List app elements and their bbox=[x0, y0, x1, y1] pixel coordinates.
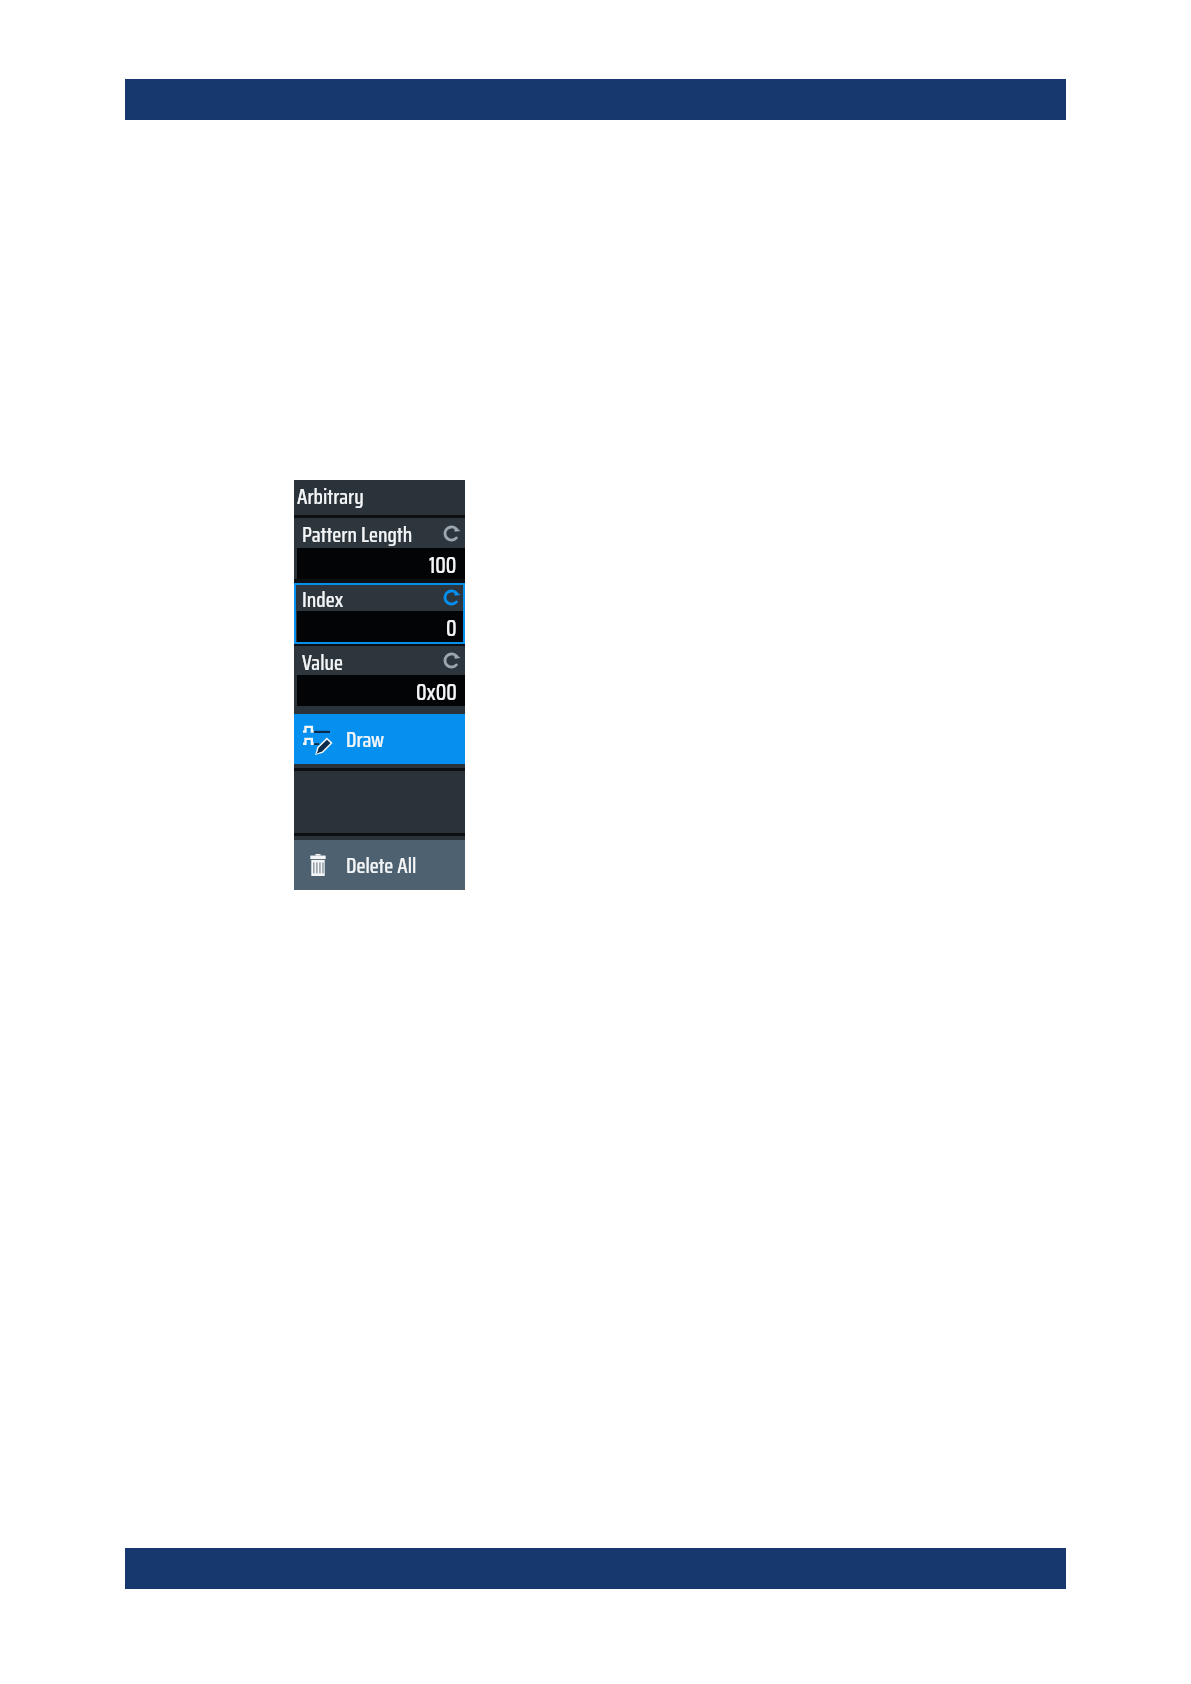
button[interactable]: Value bbox=[294, 646, 465, 706]
staticText: Arbitrary bbox=[297, 480, 364, 513]
other: Reset bbox=[442, 588, 461, 607]
other: Reset bbox=[442, 524, 461, 543]
button[interactable]: Index bbox=[294, 583, 465, 644]
button[interactable]: Delete All bbox=[294, 840, 465, 890]
staticText: 0 bbox=[446, 611, 457, 644]
staticText: Value bbox=[302, 646, 343, 675]
staticText: Index bbox=[302, 583, 344, 611]
staticText: 100 bbox=[429, 548, 457, 579]
staticText: Pattern Length bbox=[302, 518, 413, 548]
staticText: Draw bbox=[346, 723, 385, 756]
button[interactable]: Pattern Length bbox=[294, 518, 465, 579]
staticText: 0x00 bbox=[416, 675, 457, 706]
button[interactable]: Draw bbox=[294, 714, 465, 764]
staticText: Delete All bbox=[346, 849, 417, 882]
other: Reset bbox=[442, 651, 461, 670]
